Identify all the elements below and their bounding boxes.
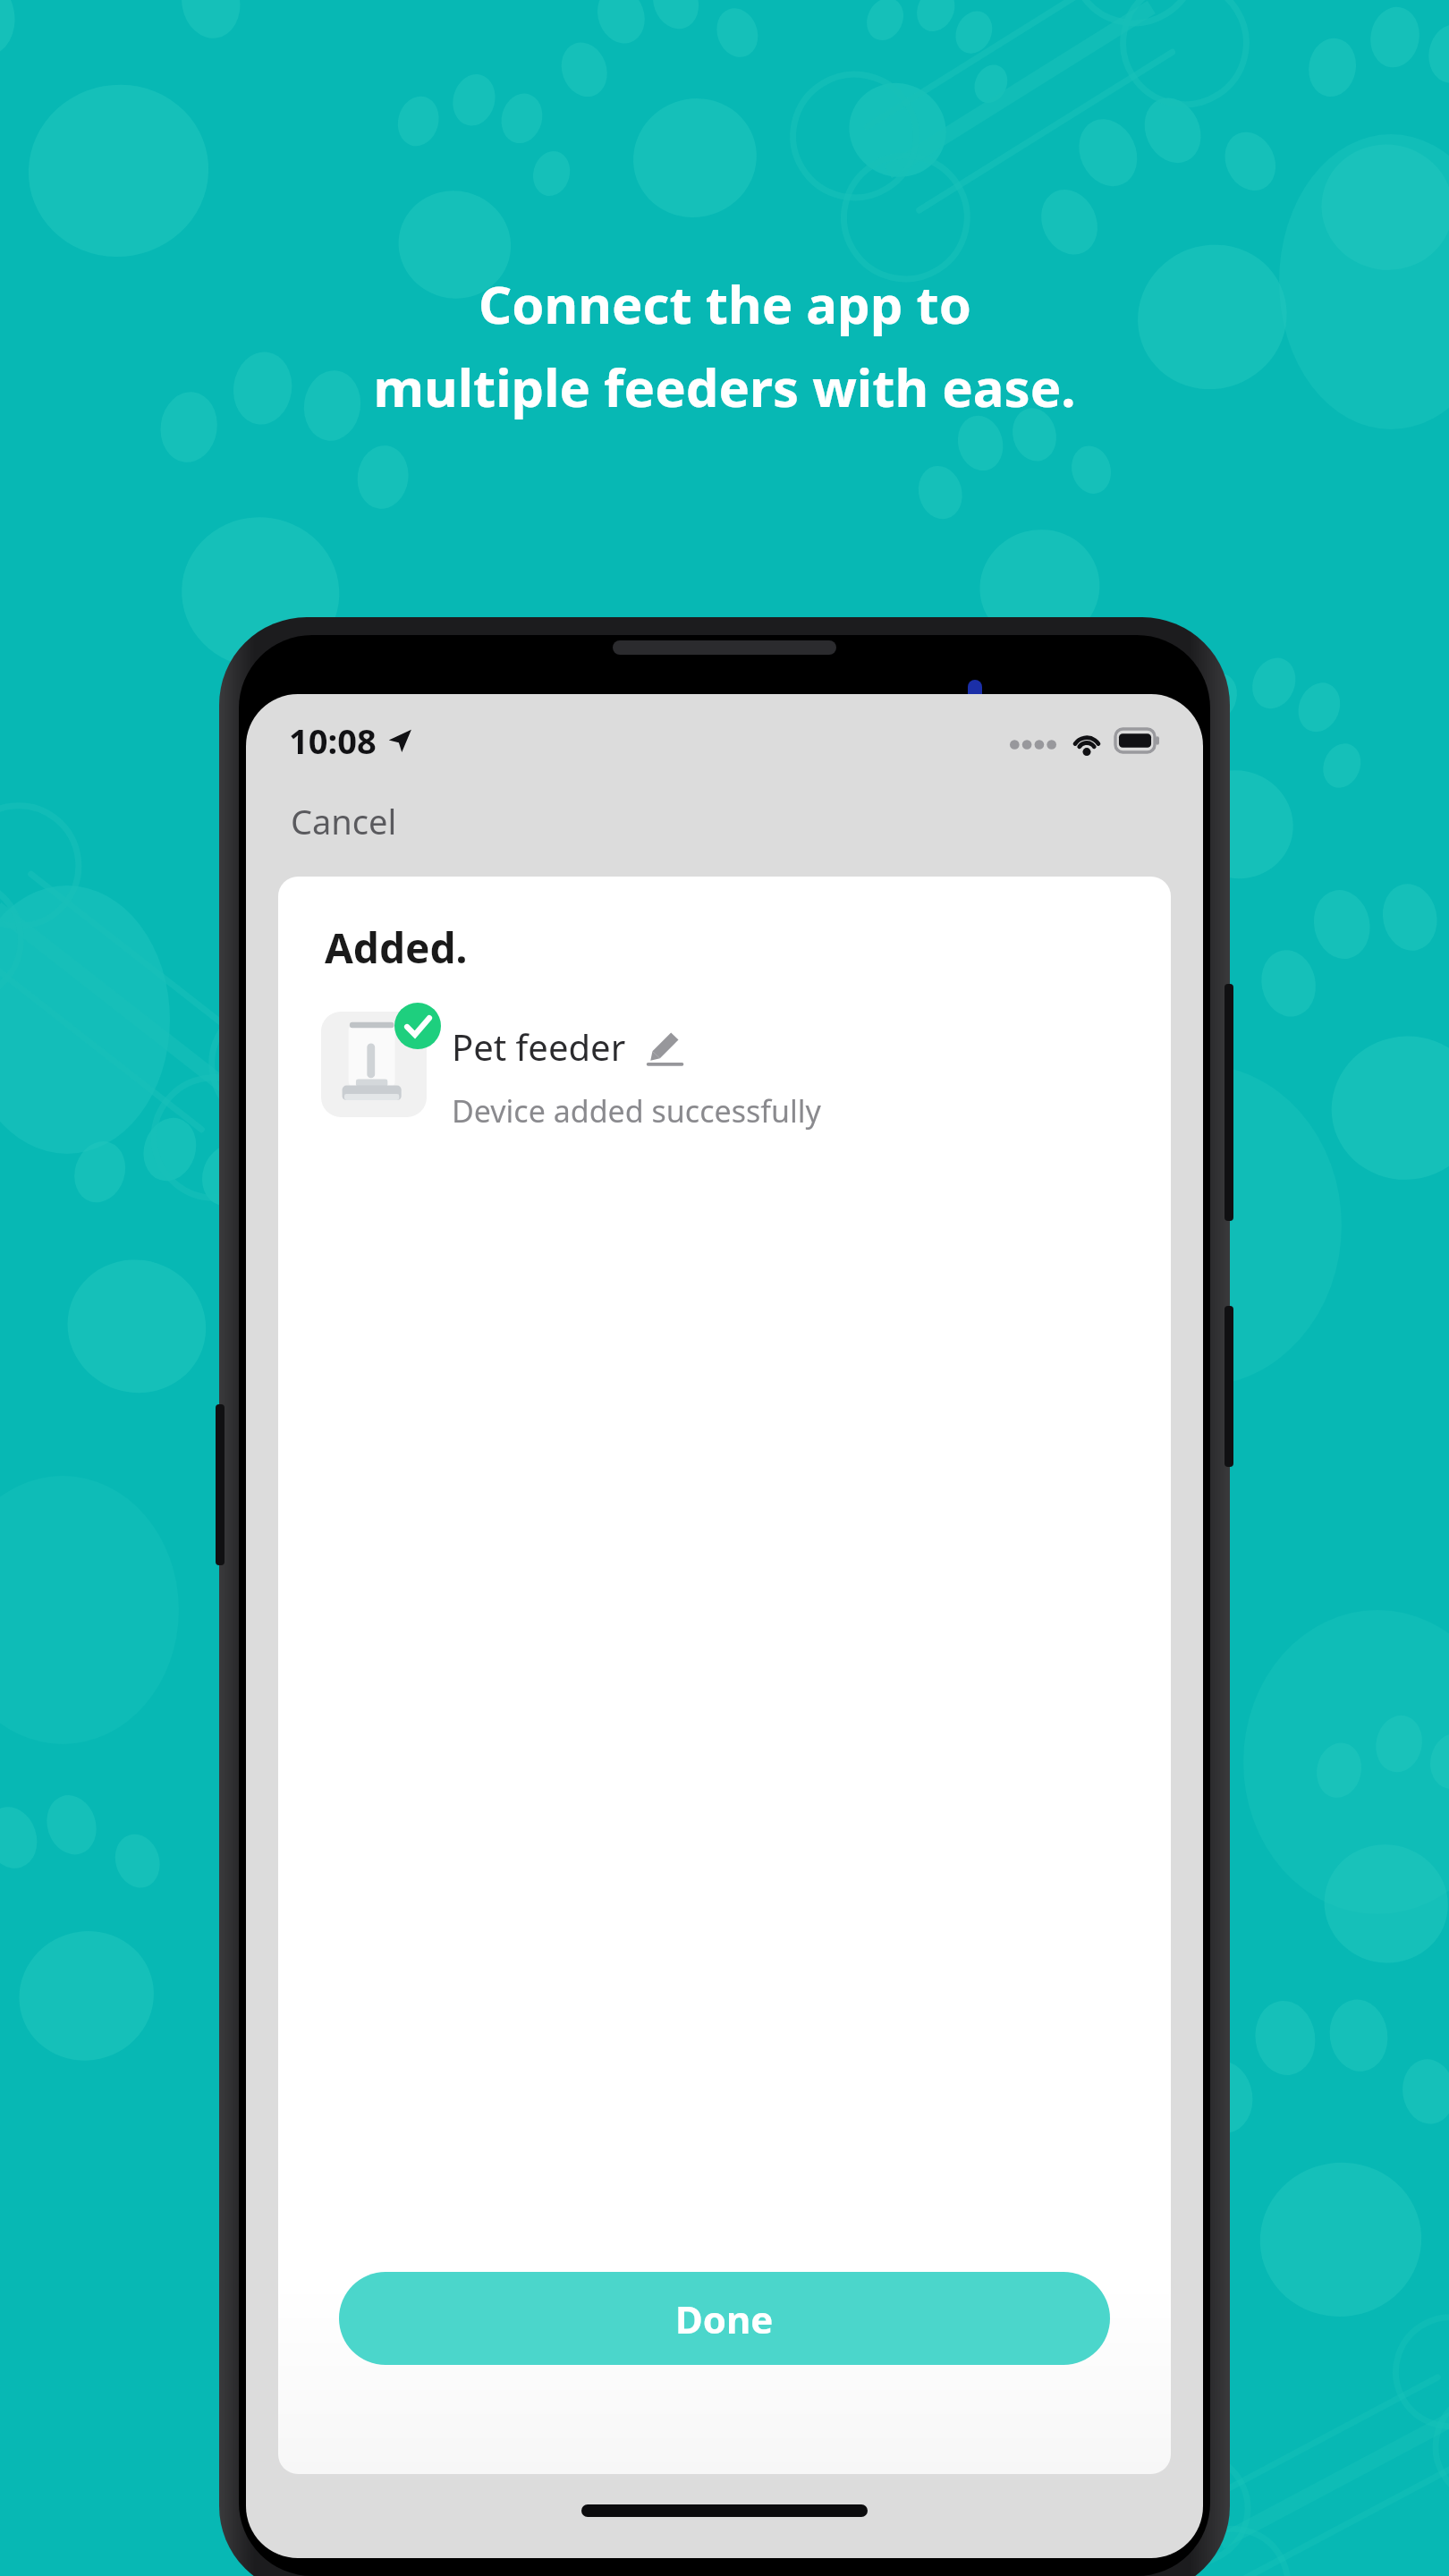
button[interactable]: Done	[339, 2272, 1110, 2365]
staticText: Done	[675, 2293, 774, 2344]
staticText: Connect the app to	[479, 268, 971, 339]
button[interactable]: Pet feeder	[278, 1008, 1171, 1135]
staticText: Device added successfully	[452, 1090, 821, 1131]
staticText: Pet feeder	[452, 1022, 626, 1071]
staticText: multiple feeders with ease.	[373, 352, 1076, 422]
staticText: Cancel	[291, 798, 397, 844]
staticText: 10:08	[289, 717, 377, 764]
button[interactable]: Rename device	[646, 1027, 685, 1066]
staticText: Added.	[325, 919, 468, 976]
button[interactable]: Cancel	[278, 789, 410, 853]
